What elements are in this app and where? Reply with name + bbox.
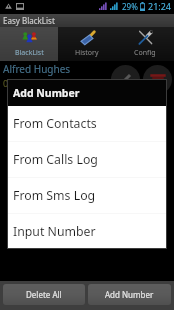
button[interactable]: Edit [111,65,140,94]
staticText: Input Number [13,223,96,240]
button[interactable]: From Contacts [7,106,167,141]
staticText: Add Number [13,86,80,100]
staticText: BlackList [15,48,44,58]
staticText: Easy BlackList [3,15,55,26]
staticText: 0123456789 [3,77,55,89]
button[interactable]: Config [116,27,174,61]
button[interactable]: From Calls Log [7,142,167,177]
staticText: From Contacts [13,115,97,132]
button[interactable]: From Sms Log [7,178,167,213]
staticText: Config [134,48,156,58]
staticText: History [75,48,99,58]
staticText: Add Number [105,289,154,300]
button[interactable]: BlackList [0,27,58,61]
button[interactable]: History [58,27,116,61]
button[interactable]: Delete [143,65,172,94]
staticText: From Calls Log [13,151,98,168]
button[interactable]: Input Number [7,214,167,249]
staticText: From Sms Log [13,187,96,204]
staticText: Delete All [26,289,62,300]
staticText: 21:24 [148,0,172,12]
staticText: Alfred Hughes [3,62,71,76]
button[interactable]: Add Number [88,284,171,305]
staticText: 29% [122,1,138,12]
button[interactable]: Delete All [3,284,85,305]
